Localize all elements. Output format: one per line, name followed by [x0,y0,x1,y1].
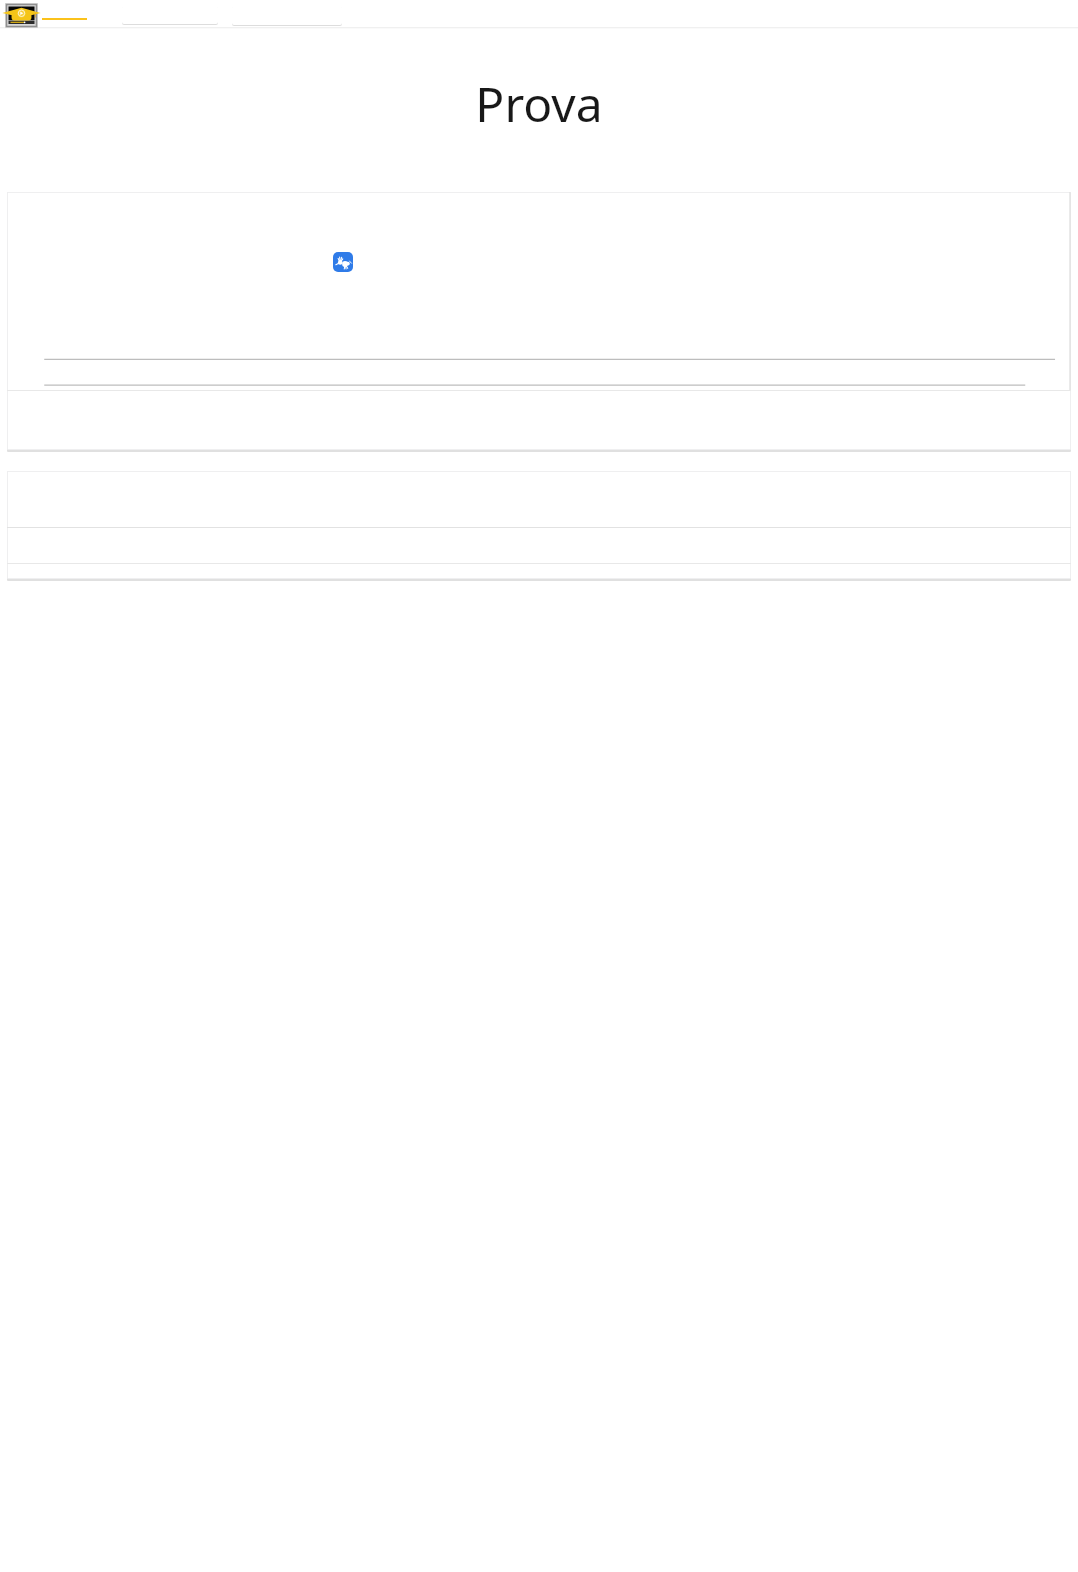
button[interactable]: Home [5,3,38,28]
button[interactable] [7,192,1071,390]
staticText: Prova [475,71,603,136]
button[interactable]: Sign language [333,252,353,272]
button[interactable] [7,564,1071,579]
